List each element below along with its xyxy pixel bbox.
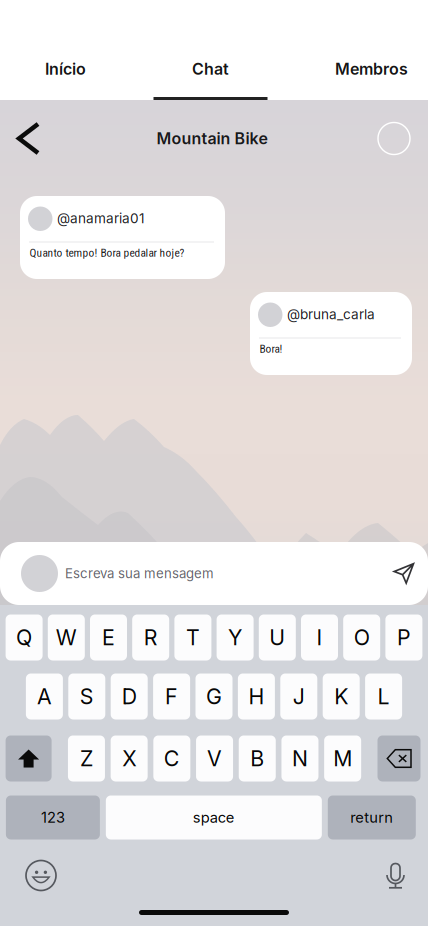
staticText: X	[122, 746, 136, 771]
button[interactable]: space	[106, 795, 322, 839]
button[interactable]: return	[328, 795, 416, 839]
button[interactable]: B	[239, 735, 276, 781]
button[interactable]: J	[280, 673, 317, 719]
button[interactable]: F	[153, 673, 190, 719]
staticText: L	[378, 684, 390, 709]
button[interactable]: Início	[0, 38, 92, 100]
button[interactable]: R	[132, 614, 169, 660]
button[interactable]: X	[111, 735, 148, 781]
button[interactable]: Shift	[6, 735, 52, 781]
button[interactable]: I	[301, 614, 338, 660]
button[interactable]: Dictate	[385, 852, 428, 893]
staticText: O	[354, 625, 370, 650]
staticText: K	[334, 684, 348, 709]
staticText: F	[165, 684, 178, 709]
staticText: 123	[41, 809, 65, 826]
staticText: Bora!	[259, 342, 282, 355]
staticText: return	[350, 809, 393, 826]
staticText: Y	[228, 625, 242, 650]
staticText: S	[80, 684, 94, 709]
button[interactable]: Q	[6, 614, 43, 660]
staticText: Q	[16, 625, 32, 650]
button[interactable]: D	[111, 673, 148, 719]
button[interactable]: Y	[217, 614, 254, 660]
staticText: @bruna_carla	[287, 306, 375, 322]
staticText: Membros	[335, 59, 408, 79]
staticText: Chat	[192, 59, 229, 79]
button[interactable]: K	[323, 673, 360, 719]
staticText: Início	[45, 59, 86, 79]
button[interactable]: G	[195, 673, 232, 719]
button[interactable]: Back	[0, 109, 56, 167]
button[interactable]: O	[343, 614, 380, 660]
button[interactable]: H	[238, 673, 275, 719]
staticText: D	[122, 684, 137, 709]
staticText: M	[333, 746, 352, 771]
button[interactable]: P	[385, 614, 422, 660]
staticText: W	[56, 625, 77, 650]
button[interactable]: Send	[379, 548, 428, 598]
button[interactable]: Emoji keyboard	[0, 851, 56, 894]
button[interactable]: Profile	[368, 109, 428, 167]
staticText: E	[102, 625, 115, 650]
staticText: G	[206, 684, 222, 709]
staticText: space	[193, 809, 235, 826]
staticText: T	[186, 625, 200, 650]
staticText: @anamaria01	[57, 210, 145, 226]
button[interactable]: V	[196, 735, 233, 781]
button[interactable]: Membros	[329, 38, 428, 100]
button[interactable]: M	[324, 735, 361, 781]
staticText: U	[269, 625, 285, 650]
button[interactable]: Chat	[152, 38, 269, 100]
button[interactable]: 123	[6, 795, 100, 839]
staticText: B	[250, 746, 264, 771]
staticText: N	[292, 746, 308, 771]
staticText: Mountain Bike	[156, 129, 267, 148]
staticText: Z	[80, 746, 93, 771]
staticText: C	[164, 746, 180, 771]
staticText: R	[144, 625, 158, 650]
button[interactable]: Delete	[377, 735, 420, 781]
button[interactable]: S	[68, 673, 105, 719]
staticText: V	[207, 746, 222, 771]
button[interactable]: N	[281, 735, 318, 781]
button[interactable]: C	[153, 735, 190, 781]
staticText: A	[37, 684, 52, 709]
button[interactable]: Z	[68, 735, 105, 781]
staticText: I	[316, 625, 322, 650]
staticText: Quanto tempo! Bora pedalar hoje?	[29, 246, 184, 259]
staticText: P	[397, 625, 411, 650]
button[interactable]: W	[48, 614, 85, 660]
button[interactable]: U	[259, 614, 296, 660]
staticText: J	[293, 684, 305, 709]
button[interactable]: A	[26, 673, 63, 719]
staticText: H	[248, 684, 264, 709]
button[interactable]: E	[90, 614, 127, 660]
staticText: Escreva sua mensagem	[65, 565, 214, 581]
button[interactable]: T	[174, 614, 211, 660]
button[interactable]: L	[365, 673, 402, 719]
